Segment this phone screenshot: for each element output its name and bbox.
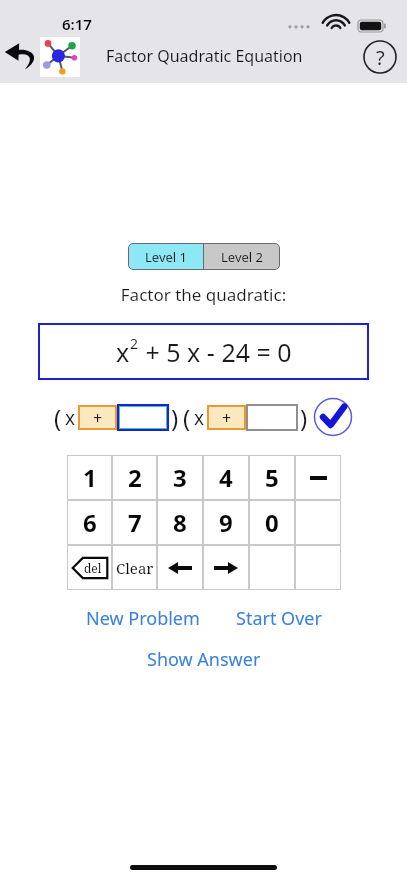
- staticText: Clear: [116, 558, 154, 578]
- staticText: (: [54, 401, 62, 434]
- button[interactable]: New Problem: [84, 604, 202, 633]
- button[interactable]: [295, 545, 341, 590]
- button[interactable]: 9: [203, 500, 249, 545]
- staticText: 6: [83, 506, 97, 539]
- button[interactable]: 6: [67, 500, 112, 545]
- button[interactable]: Help: [363, 40, 397, 74]
- staticText: 4: [219, 461, 233, 494]
- button[interactable]: Clear: [112, 545, 157, 590]
- button[interactable]: Value input: [117, 404, 169, 431]
- staticText: x: [65, 405, 76, 431]
- staticText: 6:17: [62, 14, 92, 34]
- staticText: +: [93, 407, 103, 429]
- staticText: +: [222, 407, 232, 429]
- staticText: x: [194, 405, 205, 431]
- staticText: + 5 x - 24 = 0: [139, 335, 292, 369]
- button[interactable]: [295, 455, 341, 500]
- button[interactable]: 7: [112, 500, 157, 545]
- button[interactable]: Start Over: [234, 604, 324, 633]
- staticText: 5: [265, 461, 279, 494]
- staticText: 9: [219, 506, 233, 539]
- button[interactable]: Check answer: [313, 397, 353, 437]
- staticText: 3: [173, 461, 187, 494]
- button[interactable]: 8: [157, 500, 203, 545]
- staticText: Factor the quadratic:: [0, 283, 407, 306]
- button[interactable]: 4: [203, 455, 249, 500]
- button[interactable]: Move left: [157, 545, 203, 590]
- button[interactable]: Level 2: [204, 243, 280, 270]
- staticText: Start Over: [236, 606, 322, 631]
- button[interactable]: 3: [157, 455, 203, 500]
- staticText: Level 1: [145, 248, 187, 266]
- button[interactable]: [295, 500, 341, 545]
- other: Delete: [72, 557, 108, 579]
- staticText: 1: [83, 461, 97, 494]
- staticText: (: [183, 401, 191, 434]
- button[interactable]: Value input: [246, 404, 298, 431]
- button[interactable]: +: [78, 405, 117, 430]
- button[interactable]: 2: [112, 455, 157, 500]
- button[interactable]: Back: [4, 36, 44, 76]
- button[interactable]: 1: [67, 455, 112, 500]
- staticText: 0: [265, 506, 279, 539]
- staticText: ): [171, 401, 179, 434]
- other: Move right: [214, 559, 238, 577]
- staticText: Level 2: [221, 248, 263, 266]
- button[interactable]: Delete: [67, 545, 112, 590]
- button[interactable]: Level 1: [128, 243, 203, 270]
- button[interactable]: 0: [249, 500, 295, 545]
- staticText: x: [116, 335, 130, 369]
- button[interactable]: +: [207, 405, 246, 430]
- staticText: Show Answer: [147, 647, 261, 672]
- button[interactable]: Show Answer: [145, 645, 263, 674]
- staticText: 2: [130, 334, 139, 353]
- staticText: 8: [173, 506, 187, 539]
- staticText: New Problem: [86, 606, 200, 631]
- staticText: ?: [376, 44, 385, 71]
- staticText: del: [84, 560, 102, 576]
- staticText: 2: [128, 461, 142, 494]
- staticText: Factor Quadratic Equation: [106, 45, 303, 67]
- staticText: ): [300, 401, 308, 434]
- button[interactable]: Move right: [203, 545, 249, 590]
- button[interactable]: 5: [249, 455, 295, 500]
- staticText: 7: [128, 506, 142, 539]
- button[interactable]: [249, 545, 295, 590]
- other: Move left: [168, 559, 192, 577]
